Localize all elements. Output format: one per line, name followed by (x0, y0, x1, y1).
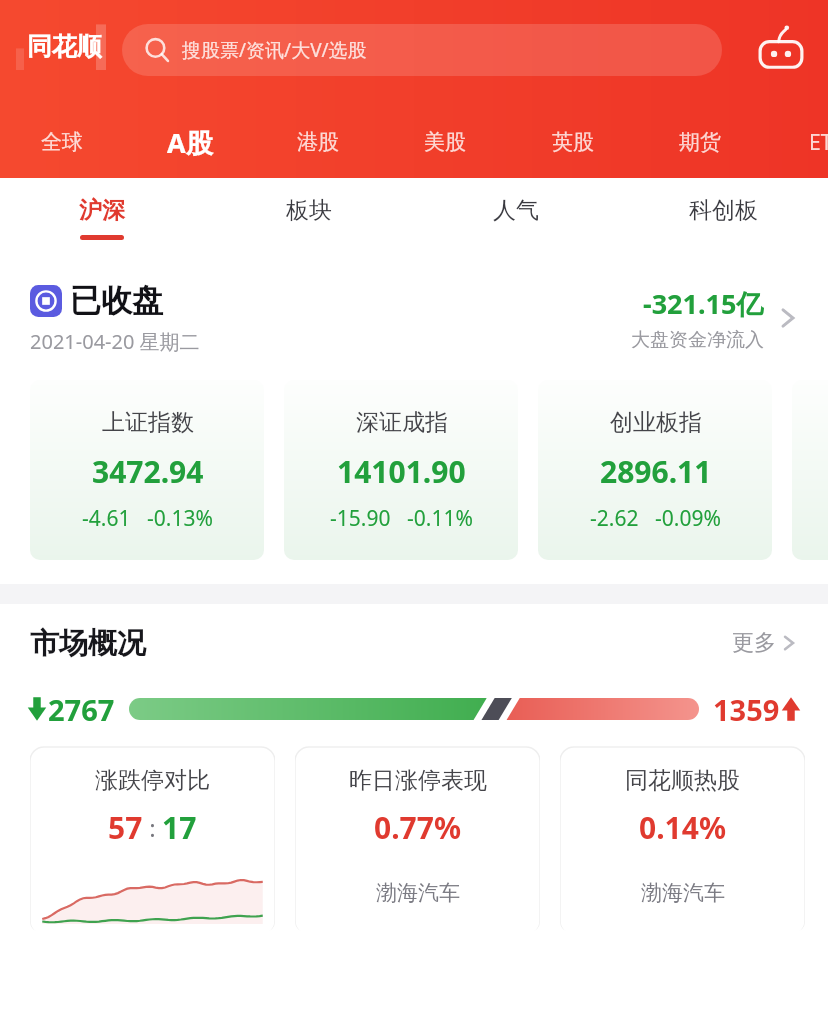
staticText: 渤海汽车 (641, 880, 725, 906)
staticText: 更多 (732, 629, 776, 657)
staticText: -0.11% (407, 504, 473, 533)
staticText: 创业板指 (610, 408, 702, 437)
staticText: 渤海汽车 (376, 880, 460, 906)
button[interactable]: 同花顺 (14, 22, 114, 70)
button[interactable]: ETF (778, 106, 828, 178)
button[interactable]: 同花顺热股 (560, 744, 805, 932)
button[interactable]: 人气 (446, 178, 586, 264)
staticText: 已收盘 (70, 281, 163, 320)
staticText: 同花顺热股 (625, 766, 740, 795)
button[interactable]: 英股 (525, 106, 621, 178)
button[interactable]: 期货 (652, 106, 748, 178)
staticText: -0.09% (655, 504, 721, 533)
staticText: 上证指数 (102, 408, 194, 437)
staticText: 市场概况 (30, 625, 146, 662)
staticText: A股 (167, 124, 213, 161)
button[interactable]: 创业板指 (538, 380, 772, 560)
staticText: -0.13% (147, 504, 213, 533)
button[interactable]: A股 (135, 106, 245, 178)
staticText: 17 (162, 807, 197, 848)
staticText: 人气 (493, 196, 539, 225)
button[interactable]: 已收盘 (0, 264, 828, 372)
button[interactable]: 港股 (270, 106, 366, 178)
button[interactable]: 昨日涨停表现 (295, 744, 540, 932)
staticText: 2896.11 (600, 451, 712, 492)
staticText: 涨跌停对比 (95, 766, 210, 795)
staticText: -2.62 (590, 504, 639, 533)
button[interactable]: 深证成指 (284, 380, 518, 560)
button[interactable]: 智能助手 (752, 22, 810, 80)
staticText: 科创板 (689, 196, 758, 225)
button[interactable]: 更多 (732, 629, 798, 657)
button[interactable]: 沪深 (32, 178, 172, 264)
staticText: 0.14% (639, 807, 726, 848)
staticText: 大盘资金净流入 (631, 328, 764, 352)
staticText: 3472.94 (92, 451, 204, 492)
staticText: -15.90 (330, 504, 391, 533)
staticText: -321.15亿 (643, 285, 764, 322)
staticText: 搜股票/资讯/大V/选股 (182, 37, 367, 63)
staticText: 沪深 (79, 196, 125, 225)
staticText: 1359 (713, 690, 780, 729)
button[interactable]: 美股 (397, 106, 493, 178)
staticText: 英股 (552, 129, 594, 155)
button[interactable]: 科创板 (653, 178, 793, 264)
staticText: : (143, 811, 162, 844)
staticText: 2767 (48, 690, 115, 729)
button[interactable] (792, 380, 828, 560)
staticText: 0.77% (374, 807, 461, 848)
button[interactable]: 板块 (239, 178, 379, 264)
staticText: 板块 (286, 196, 332, 225)
staticText: 美股 (424, 129, 466, 155)
button[interactable]: 上证指数 (30, 380, 264, 560)
staticText: 同花顺 (27, 31, 102, 62)
staticText: 深证成指 (356, 408, 448, 437)
staticText: 期货 (679, 129, 721, 155)
staticText: ETF (809, 128, 828, 157)
button[interactable]: 全球 (14, 106, 110, 178)
staticText: 14101.90 (337, 451, 466, 492)
button[interactable]: 涨跌停对比 (30, 744, 275, 932)
staticText: 2021-04-20 星期二 (30, 328, 200, 355)
staticText: -4.61 (82, 504, 131, 533)
staticText: 全球 (41, 129, 83, 155)
staticText: 港股 (297, 129, 339, 155)
staticText: 57 (108, 807, 143, 848)
button[interactable]: 搜股票/资讯/大V/选股 (122, 24, 722, 76)
staticText: 昨日涨停表现 (349, 766, 487, 795)
